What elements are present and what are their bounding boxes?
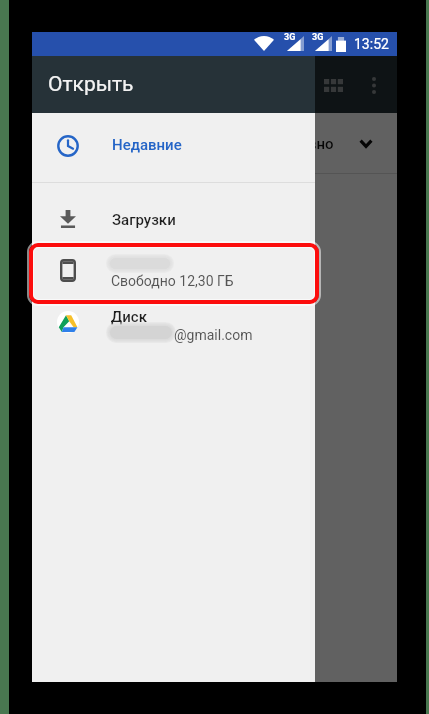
staticText: Недавние	[112, 136, 182, 154]
staticText: Недавно	[272, 135, 334, 153]
staticText: 3G	[284, 32, 296, 43]
button[interactable]: Grid view	[309, 61, 357, 109]
button[interactable]: Expand sort	[348, 125, 384, 161]
button[interactable]: More options	[350, 61, 398, 109]
staticText: @gmail.com	[174, 327, 253, 343]
button[interactable]: Загрузки	[32, 183, 315, 244]
staticText: Загрузки	[112, 211, 176, 229]
staticText: 13:52	[354, 36, 389, 52]
staticText: 3G	[312, 32, 324, 43]
button[interactable]: Свободно 12,30 ГБ	[32, 244, 315, 302]
button[interactable]: Недавние	[32, 113, 315, 182]
staticText: Свободно 12,30 ГБ	[111, 273, 234, 289]
staticText: Диск	[111, 308, 147, 326]
button[interactable]: Диск	[32, 302, 315, 360]
staticText: Открыть	[48, 72, 134, 97]
